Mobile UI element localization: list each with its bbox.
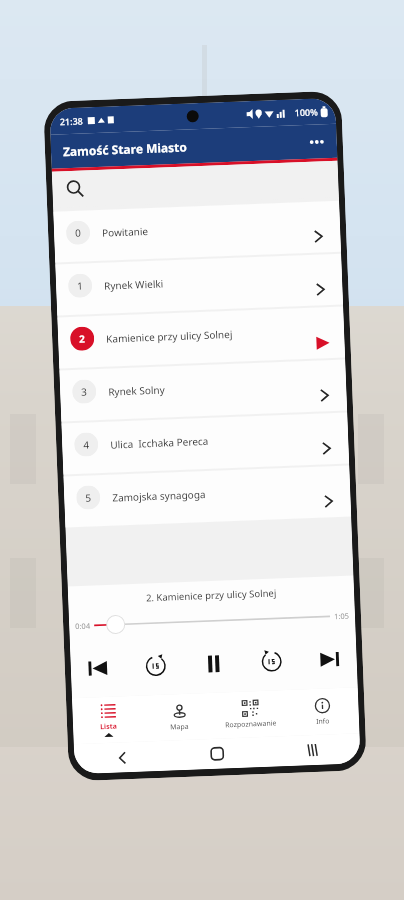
staticText: 100% xyxy=(294,105,319,118)
staticText: 5 xyxy=(85,490,91,505)
button[interactable]: Mapa xyxy=(143,702,215,733)
button[interactable]: Search xyxy=(52,161,339,208)
staticText: Powitanie xyxy=(102,224,148,240)
staticText: 21:38 xyxy=(60,114,84,127)
staticText: Ulica Icchaka Pereca xyxy=(110,434,209,452)
staticText: Zamość Stare Miasto xyxy=(63,138,187,159)
button[interactable]: Pause xyxy=(196,646,231,681)
staticText: 0:04 xyxy=(75,621,90,631)
other: Search xyxy=(66,179,85,198)
button[interactable] xyxy=(94,605,330,636)
button[interactable]: 3 xyxy=(59,360,347,421)
staticText: 2 xyxy=(79,331,85,346)
button[interactable]: Next xyxy=(312,642,347,677)
staticText: Rynek Solny xyxy=(108,382,165,399)
staticText: Zamojska synagoga xyxy=(112,487,206,505)
button[interactable]: Back xyxy=(107,742,138,773)
staticText: 1:05 xyxy=(334,611,349,621)
button[interactable]: Previous xyxy=(80,651,115,686)
staticText: Rynek Wielki xyxy=(104,276,164,293)
button[interactable]: 0 xyxy=(53,201,341,263)
staticText: Info xyxy=(316,716,330,727)
button[interactable]: More options xyxy=(302,127,331,156)
button[interactable]: Lista xyxy=(72,702,144,738)
staticText: Mapa xyxy=(170,722,189,732)
staticText: Rozpoznawanie xyxy=(225,718,277,730)
button[interactable]: Home xyxy=(202,738,233,769)
button[interactable]: 1 xyxy=(55,254,343,315)
button[interactable]: Recent apps xyxy=(297,735,328,766)
staticText: 2. Kamienice przy ulicy Solnej xyxy=(68,583,354,607)
staticText: 0 xyxy=(75,226,81,240)
button[interactable]: 2 xyxy=(57,307,345,368)
staticText: 3 xyxy=(81,384,87,399)
button[interactable]: Rewind 15 seconds xyxy=(138,648,173,684)
button[interactable]: Info xyxy=(286,696,359,728)
staticText: Kamienice przy ulicy Solnej xyxy=(106,327,233,346)
staticText: 4 xyxy=(83,437,89,452)
button[interactable]: 5 xyxy=(63,465,351,527)
staticText: 1 xyxy=(77,279,83,293)
button[interactable]: 4 xyxy=(61,412,349,474)
button[interactable]: Forward 15 seconds xyxy=(254,644,289,679)
button[interactable]: Rozpoznawanie xyxy=(214,699,287,731)
staticText: Lista xyxy=(100,722,117,732)
